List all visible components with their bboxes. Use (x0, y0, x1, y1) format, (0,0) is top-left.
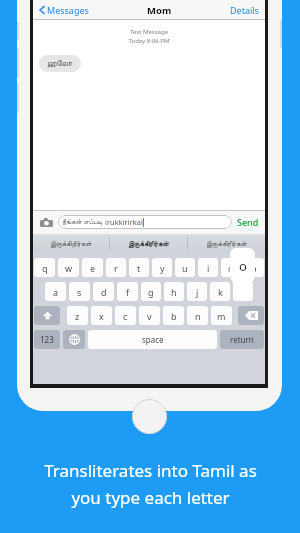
staticText: Transliterates into Tamil as (44, 459, 257, 482)
button[interactable]: இருக்கிறிர்கள் (33, 234, 109, 253)
staticText: s (77, 286, 82, 298)
button[interactable]: y (152, 258, 172, 277)
button[interactable]: m (211, 306, 232, 325)
staticText: t (137, 262, 141, 274)
staticText: v (147, 310, 152, 322)
button[interactable]: h (164, 282, 184, 301)
button[interactable]: space (88, 330, 217, 349)
button[interactable]: Messages (37, 2, 91, 18)
button[interactable]: x (91, 306, 112, 325)
staticText: Details (230, 4, 259, 16)
staticText: n (195, 310, 201, 322)
button[interactable]: j (187, 282, 207, 301)
button[interactable]: நீங்கள் எப்படி (58, 215, 232, 229)
staticText: k (218, 286, 223, 298)
button[interactable]: k (210, 282, 230, 301)
staticText: இருக்கிரிர்கள் (206, 240, 247, 247)
staticText: r (114, 262, 118, 274)
staticText: you type each letter (71, 486, 230, 509)
button[interactable]: n (187, 306, 208, 325)
staticText: f (126, 286, 130, 298)
staticText: m (217, 310, 226, 322)
staticText: a (53, 286, 59, 298)
staticText: d (101, 286, 107, 298)
staticText: return (230, 334, 254, 345)
staticText: x (99, 310, 104, 322)
button[interactable]: g (141, 282, 161, 301)
staticText: Today 8:06 PM (33, 37, 265, 45)
staticText: i (207, 262, 210, 274)
button[interactable]: f (117, 282, 138, 301)
button[interactable]: 123 (34, 330, 60, 349)
staticText: p (251, 262, 257, 274)
button[interactable]: u (175, 258, 195, 277)
staticText: e (90, 262, 96, 274)
button[interactable]: Details (228, 2, 261, 18)
button[interactable]: இருக்கிரிர்கள் (188, 234, 265, 253)
button[interactable]: return (220, 330, 264, 349)
staticText: u (182, 262, 188, 274)
button[interactable]: c (115, 306, 136, 325)
staticText: o (239, 257, 247, 275)
button[interactable]: i (198, 258, 218, 277)
staticText: y (160, 262, 165, 274)
staticText: Mom (147, 4, 172, 17)
button[interactable]: Send (236, 214, 260, 230)
button[interactable]: Change keyboard (63, 330, 85, 349)
staticText: 123 (40, 334, 54, 345)
button[interactable]: p (244, 258, 264, 277)
staticText: w (65, 262, 73, 274)
staticText: Messages (47, 4, 89, 16)
button[interactable]: r (106, 258, 126, 277)
button[interactable]: b (163, 306, 184, 325)
button[interactable]: ஹலோ (39, 55, 81, 72)
staticText: c (123, 310, 128, 322)
button[interactable]: z (67, 306, 88, 325)
staticText: இருக்கிறிர்கள் (50, 240, 92, 247)
staticText: h (171, 286, 177, 298)
staticText: q (42, 262, 48, 274)
button[interactable]: t (129, 258, 149, 277)
staticText: b (171, 310, 177, 322)
staticText: o (228, 262, 234, 274)
button[interactable]: இருக்கிரிர்கள் (110, 234, 187, 253)
staticText: j (196, 286, 199, 298)
staticText: நீங்கள் எப்படி (62, 217, 105, 227)
button[interactable]: s (69, 282, 90, 301)
staticText: Send (237, 216, 259, 228)
button[interactable]: a (45, 282, 66, 301)
staticText: இருக்கிரிர்கள் (128, 240, 169, 247)
staticText: space (142, 334, 164, 345)
button[interactable]: l (233, 282, 253, 301)
button[interactable]: e (82, 258, 103, 277)
button[interactable]: Home (132, 399, 167, 434)
button[interactable]: w (58, 258, 79, 277)
staticText: ஹலோ (47, 60, 73, 68)
button[interactable]: o (221, 258, 241, 277)
button[interactable]: v (139, 306, 160, 325)
staticText: g (148, 286, 154, 298)
button[interactable]: Backspace (238, 306, 264, 325)
button[interactable]: Shift (34, 306, 60, 325)
staticText: z (75, 310, 80, 322)
button[interactable]: Camera (38, 216, 54, 228)
staticText: Text Message (33, 28, 265, 36)
staticText: irukkirirkal (105, 217, 143, 227)
button[interactable]: q (34, 258, 55, 277)
button[interactable]: d (93, 282, 114, 301)
